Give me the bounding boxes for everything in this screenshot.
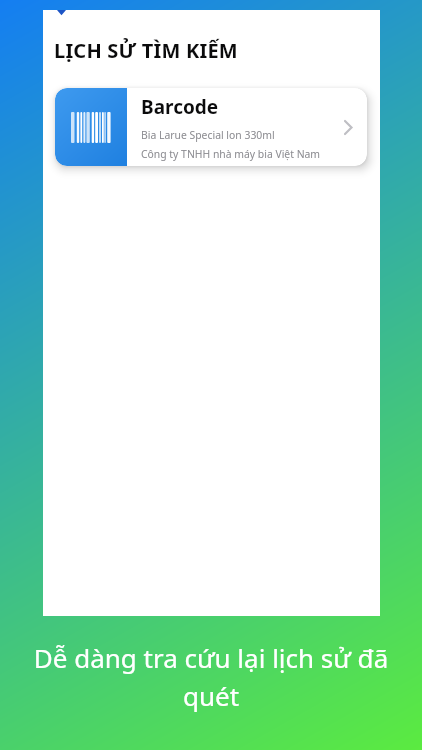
staticText: Bia Larue Special lon 330ml (141, 128, 275, 142)
staticText: LỊCH SỬ TÌM KIẾM (54, 37, 238, 64)
staticText: Công ty TNHH nhà máy bia Việt Nam (141, 147, 321, 161)
staticText: Dễ dàng tra cứu lại lịch sử đã quét (0, 640, 422, 713)
staticText: Barcode (141, 94, 219, 120)
button[interactable]: Barcode (55, 88, 367, 166)
